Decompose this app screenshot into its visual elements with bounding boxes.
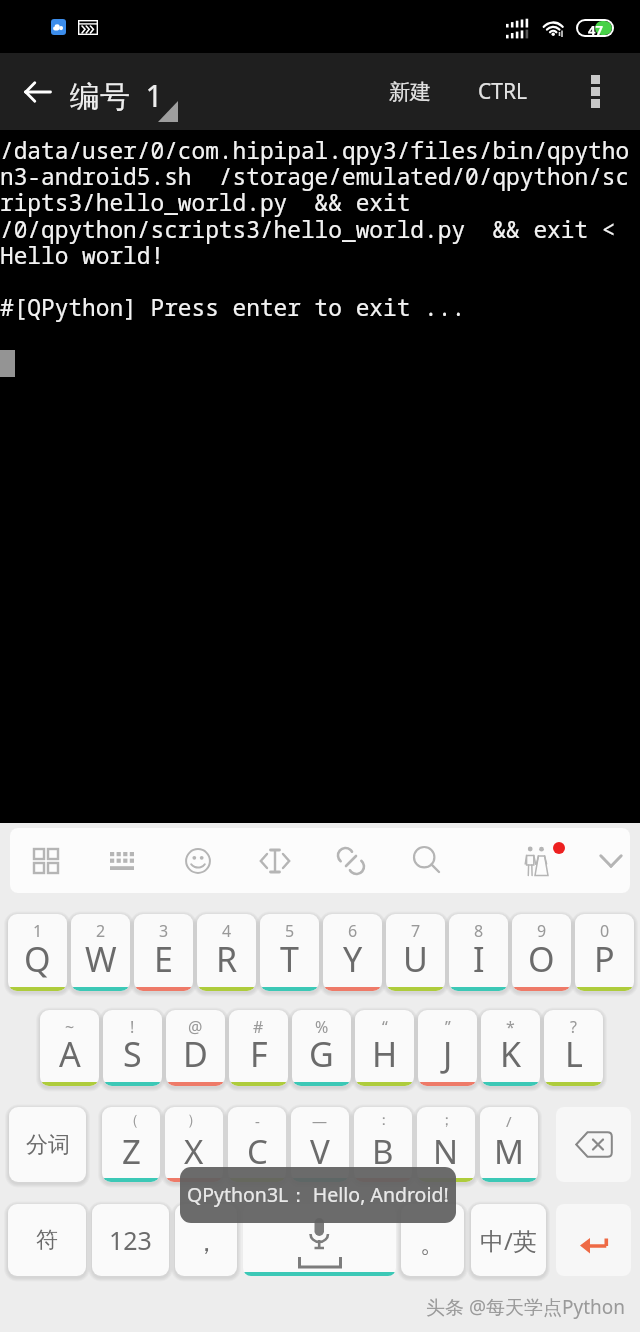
button[interactable]: 3 [134,914,193,991]
staticText: B [372,1129,394,1174]
button[interactable]: 。 [401,1204,464,1276]
staticText: X [184,1129,204,1174]
button[interactable]: ! [103,1010,162,1086]
button[interactable]: 1 [8,914,67,991]
button[interactable]: “ [355,1010,414,1086]
button[interactable]: 符 [8,1204,86,1276]
button[interactable]: % [292,1010,351,1086]
button[interactable]: Hide keyboard [581,828,630,893]
button[interactable]: 123 [92,1204,169,1276]
staticText: ~ [65,1016,75,1038]
button[interactable]: # [229,1010,288,1086]
button[interactable]: 7 [386,914,445,991]
button[interactable]: — [291,1107,349,1182]
button[interactable]: More options [564,53,626,130]
button[interactable]: 2 [71,914,130,991]
button[interactable]: - [228,1107,286,1182]
button[interactable]: Attach [321,828,381,893]
button[interactable]: 中/英 [471,1204,546,1276]
staticText: 47 [588,21,603,35]
staticText: 。 [420,1228,445,1259]
staticText: / [506,1111,512,1131]
staticText: U [403,936,428,982]
button[interactable]: 新建 [369,53,450,130]
staticText: n3-android5.sh /storage/emulated/0/qpyth… [0,161,630,192]
staticText: #[QPython] Press enter to exit ... [0,292,466,323]
staticText: 编号 1 [70,75,163,116]
button[interactable]: ” [418,1010,477,1086]
button[interactable]: ~ [40,1010,99,1086]
staticText: ， [194,1227,219,1258]
staticText: K [500,1031,522,1077]
staticText: QPython3L： Hello, Android! [187,1181,449,1208]
button[interactable]: * [481,1010,540,1086]
button[interactable]: Cloud upload [51,19,66,35]
button[interactable]: @ [166,1010,225,1086]
button[interactable]: Themes [507,828,567,893]
button[interactable]: Enter [556,1204,631,1276]
button[interactable]: 4 [197,914,256,991]
staticText: N [433,1129,459,1174]
staticText: CTRL [478,77,528,106]
button[interactable]: 9 [512,914,571,991]
button[interactable]: ； [417,1107,475,1182]
button[interactable]: （ [102,1107,160,1182]
staticText: Q [24,936,51,982]
button[interactable]: Keyboard layout [92,828,152,893]
staticText: W [85,936,117,982]
staticText: ” [445,1016,451,1038]
staticText: 0 [600,920,610,942]
staticText: 5 [285,920,295,942]
staticText: P [594,936,615,982]
staticText: 符 [36,1226,58,1254]
button[interactable]: Back [6,53,68,130]
button[interactable]: Apps [16,828,76,893]
button[interactable]: 分词 [9,1107,86,1182]
button[interactable]: / [480,1107,538,1182]
button[interactable]: ? [544,1010,603,1086]
staticText: * [506,1016,515,1038]
staticText: 3 [159,920,169,942]
button[interactable]: Backspace [556,1107,631,1182]
staticText: ： [376,1111,391,1130]
button[interactable]: 0 [575,914,634,991]
staticText: ! [130,1016,135,1038]
staticText: M [494,1129,524,1174]
staticText: 分词 [26,1131,70,1159]
button[interactable]: Text edit [245,828,305,893]
staticText: 新建 [389,79,431,105]
button[interactable]: Emoji [168,828,228,893]
staticText: H [372,1031,398,1077]
button[interactable]: CTRL [460,53,546,130]
staticText: 9 [537,920,547,942]
button[interactable]: ： [354,1107,412,1182]
button[interactable]: 6 [323,914,382,991]
staticText: — [312,1111,328,1131]
button[interactable]: ） [165,1107,223,1182]
staticText: 头条 @每天学点Python [426,1294,626,1320]
button[interactable]: Search [397,828,457,893]
staticText: 8 [474,920,484,942]
staticText: E [154,936,173,982]
staticText: A [59,1031,81,1077]
staticText: O [528,936,555,982]
button[interactable]: 8 [449,914,508,991]
button[interactable]: ， [175,1204,237,1276]
staticText: 7 [411,920,421,942]
staticText: @ [188,1016,203,1038]
staticText: 4 [222,920,232,942]
button[interactable]: Space [243,1204,396,1276]
staticText: 123 [109,1223,152,1257]
staticText: 6 [348,920,358,942]
button[interactable]: 5 [260,914,319,991]
staticText: % [315,1016,329,1038]
staticText: # [253,1016,264,1038]
staticText: （ [124,1111,139,1130]
staticText: 中/英 [480,1224,537,1257]
staticText: T [280,936,299,982]
staticText: Y [343,936,363,982]
staticText: 2 [96,920,106,942]
staticText: J [443,1031,453,1077]
staticText: /data/user/0/com.hipipal.qpy3/files/bin/… [0,135,630,166]
staticText: - [255,1111,260,1131]
